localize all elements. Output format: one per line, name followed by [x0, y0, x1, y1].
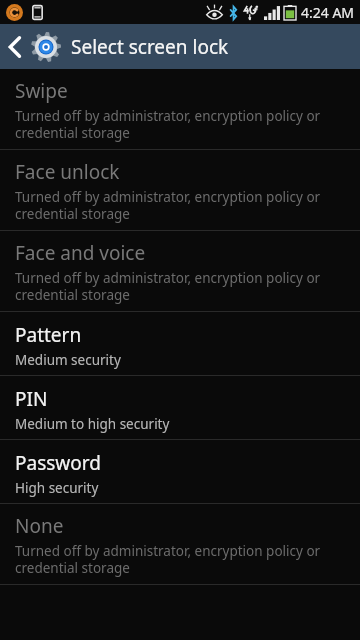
staticText: Turned off by administrator, encryption …	[15, 269, 348, 304]
staticText: Face unlock	[15, 159, 120, 185]
button[interactable]: Face and voice	[0, 231, 360, 311]
button[interactable]: Navigate up	[0, 31, 360, 63]
staticText: Turned off by administrator, encryption …	[15, 107, 348, 142]
button[interactable]: PIN	[0, 376, 360, 439]
staticText: Medium to high security	[15, 415, 170, 433]
staticText: 4:24 AM	[301, 3, 355, 22]
button[interactable]: Face unlock	[0, 150, 360, 230]
button[interactable]: Password	[0, 440, 360, 503]
staticText: Turned off by administrator, encryption …	[15, 542, 348, 577]
staticText: None	[15, 513, 64, 539]
staticText: Password	[15, 450, 101, 476]
staticText: Turned off by administrator, encryption …	[15, 188, 348, 223]
staticText: Pattern	[15, 322, 82, 348]
staticText: High security	[15, 479, 99, 497]
button[interactable]: Pattern	[0, 312, 360, 375]
staticText: PIN	[15, 386, 48, 412]
staticText: Swipe	[15, 78, 68, 104]
staticText: Select screen lock	[71, 34, 229, 60]
button[interactable]: Swipe	[0, 69, 360, 149]
staticText: Face and voice	[15, 240, 146, 266]
button[interactable]: None	[0, 504, 360, 584]
staticText: Medium security	[15, 351, 121, 369]
